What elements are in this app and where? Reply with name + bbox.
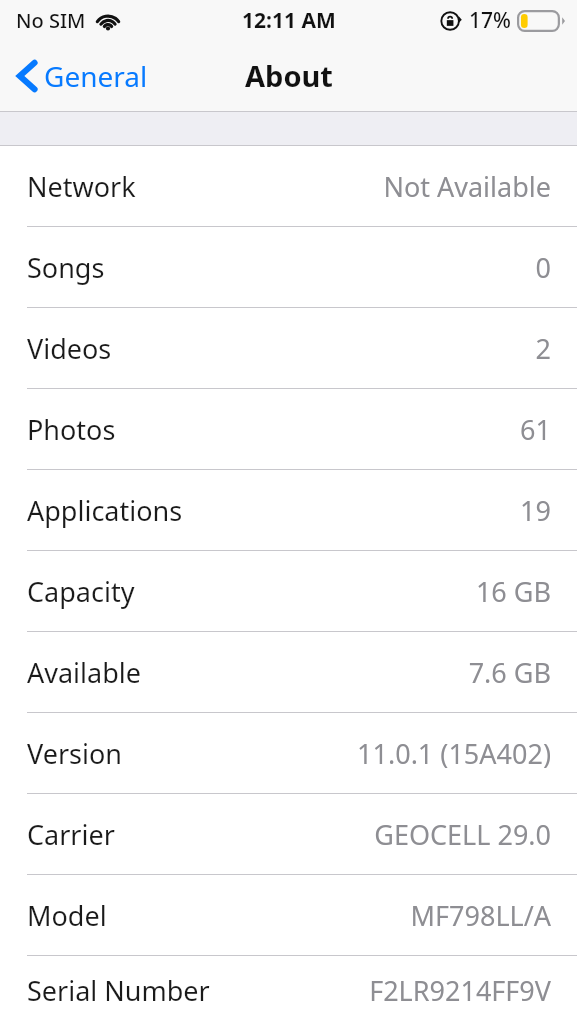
- staticText: General: [44, 57, 148, 95]
- staticText: 61: [520, 411, 551, 448]
- staticText: 7.6 GB: [468, 654, 551, 691]
- staticText: 2: [535, 330, 551, 367]
- staticText: Capacity: [27, 573, 135, 610]
- staticText: Photos: [27, 411, 116, 448]
- staticText: Not Available: [383, 168, 551, 205]
- button[interactable]: Network: [0, 146, 577, 226]
- staticText: 19: [520, 492, 551, 529]
- staticText: Model: [27, 897, 107, 934]
- staticText: 17%: [469, 6, 511, 35]
- staticText: About: [245, 56, 333, 95]
- staticText: Songs: [27, 249, 105, 286]
- button[interactable]: Available: [0, 632, 577, 712]
- button[interactable]: Songs: [0, 227, 577, 307]
- button[interactable]: Version: [0, 713, 577, 793]
- button[interactable]: Photos: [0, 389, 577, 469]
- button[interactable]: Model: [0, 875, 577, 955]
- button[interactable]: Applications: [0, 470, 577, 550]
- staticText: Applications: [27, 492, 183, 529]
- staticText: MF798LL/A: [410, 897, 551, 934]
- button[interactable]: Videos: [0, 308, 577, 388]
- staticText: 12:11 AM: [242, 6, 336, 35]
- staticText: 16 GB: [475, 573, 551, 610]
- other: Rotation lock: [440, 10, 462, 32]
- staticText: Version: [27, 735, 122, 772]
- button[interactable]: Serial Number: [0, 956, 577, 1024]
- staticText: 11.0.1 (15A402): [357, 735, 551, 772]
- button[interactable]: Carrier: [0, 794, 577, 874]
- staticText: Videos: [27, 330, 112, 367]
- staticText: F2LR9214FF9V: [369, 972, 551, 1009]
- button[interactable]: General: [14, 51, 152, 101]
- staticText: No SIM: [16, 7, 86, 34]
- staticText: GEOCELL 29.0: [374, 816, 551, 853]
- button[interactable]: Capacity: [0, 551, 577, 631]
- staticText: Available: [27, 654, 141, 691]
- staticText: Network: [27, 168, 136, 205]
- staticText: Serial Number: [27, 972, 210, 1009]
- staticText: Carrier: [27, 816, 115, 853]
- staticText: 0: [535, 249, 551, 286]
